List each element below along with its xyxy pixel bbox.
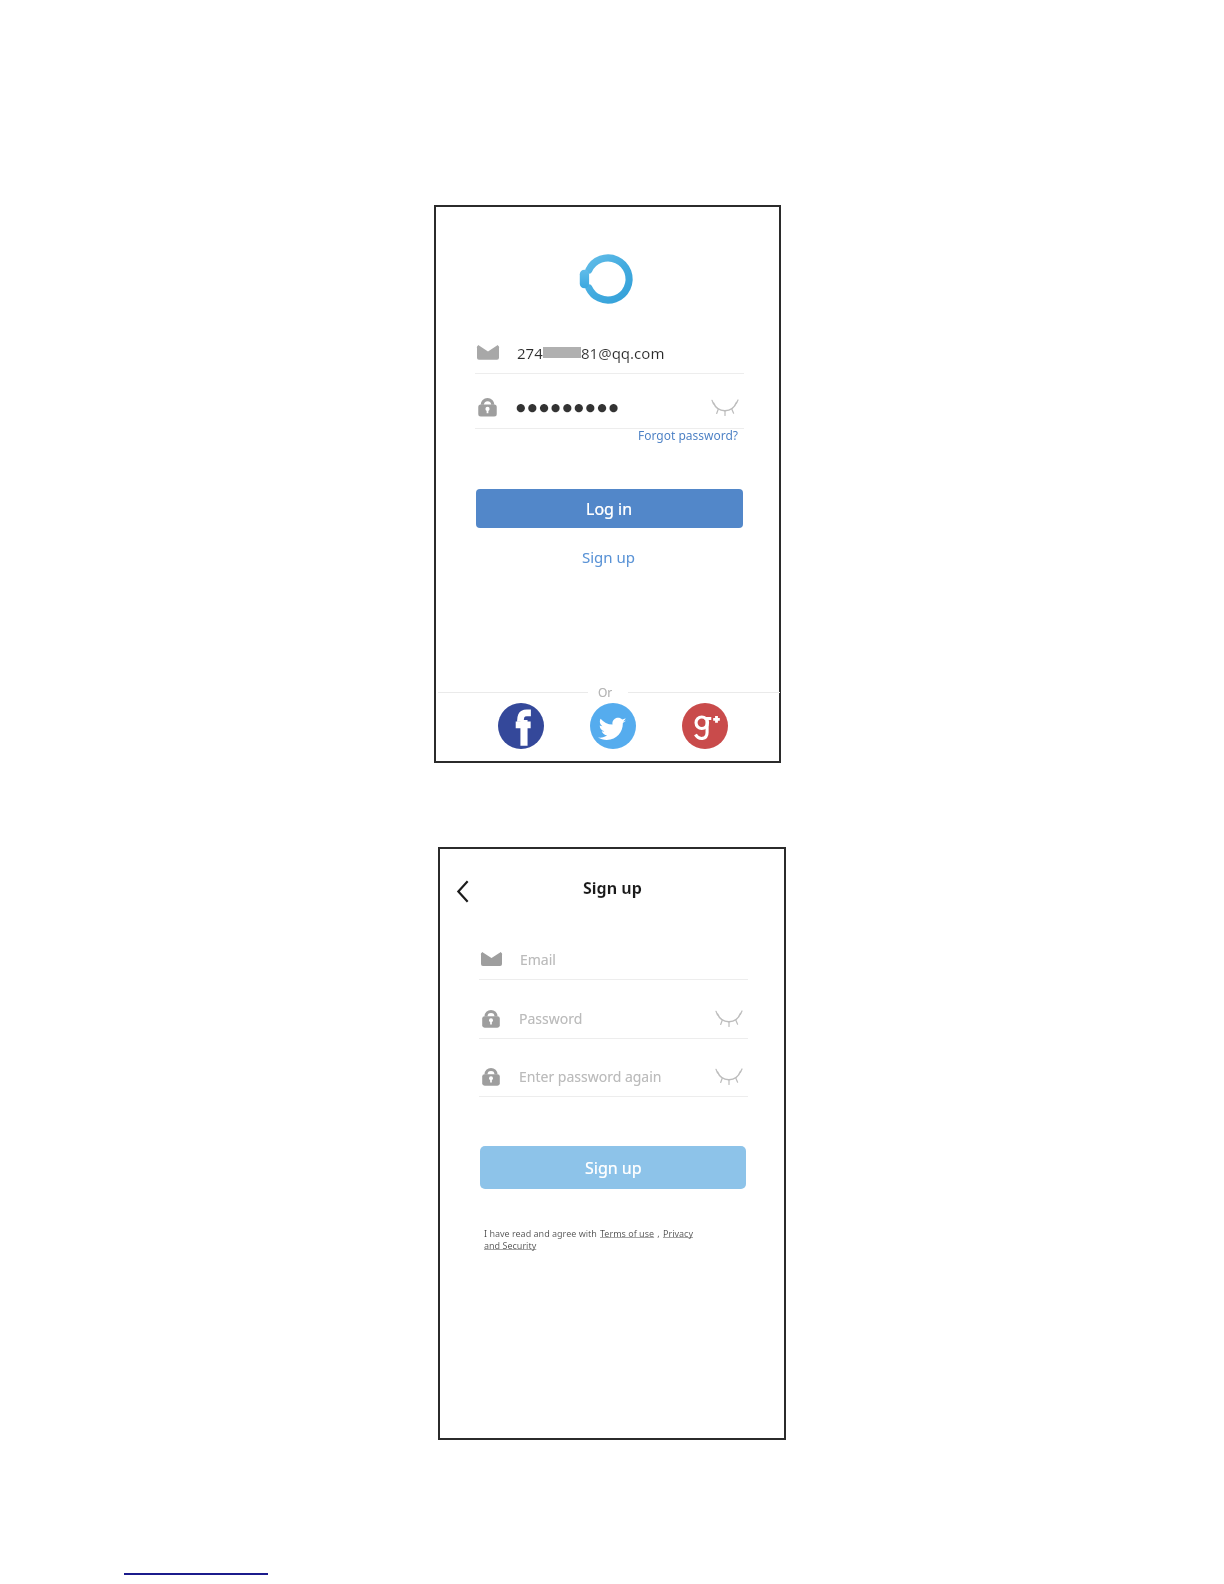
staticText: Sign up — [583, 877, 642, 899]
staticText: Password — [519, 1009, 583, 1028]
staticText: Privacy — [663, 1227, 694, 1239]
button[interactable]: Show password — [712, 1005, 746, 1031]
button[interactable]: Sign up — [582, 547, 635, 567]
staticText: and Security — [484, 1239, 537, 1251]
button[interactable]: Show password — [712, 1063, 746, 1089]
staticText: I have read and agree with — [484, 1227, 600, 1239]
button[interactable]: Sign up — [480, 1146, 746, 1189]
button[interactable]: Password — [481, 998, 746, 1038]
button[interactable]: Email — [481, 939, 746, 979]
staticText: 274 — [517, 343, 543, 363]
button[interactable]: Sign in with Twitter — [590, 703, 636, 749]
staticText: Forgot password? — [638, 427, 739, 443]
staticText: 81@qq.com — [581, 343, 665, 363]
button[interactable]: Enter password again — [481, 1056, 746, 1096]
staticText: Or — [598, 684, 613, 700]
staticText: Log in — [586, 498, 633, 520]
staticText: , — [655, 1227, 663, 1239]
button[interactable]: and Security — [484, 1239, 537, 1251]
button[interactable]: Log in — [476, 489, 743, 528]
button[interactable]: Privacy — [663, 1227, 694, 1239]
staticText: Email — [520, 950, 556, 969]
staticText: Terms of use — [600, 1227, 655, 1239]
button[interactable]: Show password — [708, 394, 742, 420]
button[interactable]: Sign in with Google Plus — [682, 703, 728, 749]
button[interactable]: ●●●●●●●●● — [477, 386, 742, 428]
button[interactable]: Back — [442, 871, 482, 911]
button[interactable]: Terms of use — [600, 1227, 655, 1239]
button[interactable]: 274 — [477, 333, 742, 373]
staticText: Sign up — [585, 1157, 642, 1179]
staticText: ●●●●●●●●● — [516, 401, 621, 414]
staticText: Sign up — [582, 547, 635, 567]
staticText: Enter password again — [519, 1067, 662, 1086]
button[interactable]: Forgot password? — [638, 427, 739, 443]
button[interactable]: Sign in with Facebook — [498, 703, 544, 749]
